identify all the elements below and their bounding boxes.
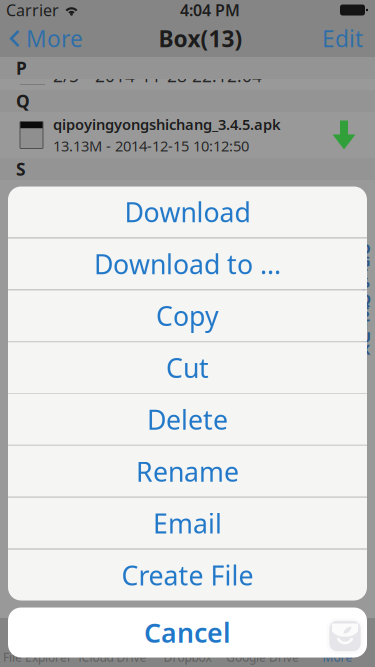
button[interactable]: Delete — [8, 394, 367, 445]
staticText: Copy — [156, 298, 219, 333]
button[interactable]: Edit — [310, 20, 375, 57]
button[interactable]: Create File — [8, 550, 367, 600]
button[interactable]: File Explorer — [0, 618, 75, 667]
staticText: P — [16, 56, 27, 79]
staticText: 4:04 PM — [180, 0, 240, 21]
staticText: Cancel — [144, 615, 231, 650]
staticText: Download — [124, 194, 250, 230]
staticText: Box(13) — [158, 23, 242, 53]
staticText: More — [322, 649, 352, 665]
staticText: Download to ... — [94, 246, 281, 281]
button[interactable]: More — [0, 20, 91, 57]
staticText: More — [26, 23, 83, 53]
staticText: D — [360, 239, 371, 258]
staticText: G — [360, 251, 371, 271]
button[interactable]: Dropbox — [150, 618, 225, 667]
button[interactable]: Cancel — [0, 607, 375, 657]
button[interactable]: Download to ... — [8, 238, 367, 289]
staticText: Delete — [147, 402, 228, 437]
staticText: Q — [16, 89, 30, 112]
staticText: T — [361, 314, 369, 334]
button[interactable]: Rename — [8, 446, 367, 497]
staticText: Cut — [166, 350, 209, 385]
staticText: Carrier — [6, 0, 59, 21]
staticText: qipoyingyongshichang_3.4.5.apk — [53, 114, 281, 134]
staticText: P — [361, 276, 370, 296]
staticText: S — [361, 302, 369, 321]
button[interactable]: Google Drive — [225, 618, 300, 667]
button[interactable]: Email — [8, 498, 367, 549]
staticText: Create File — [121, 557, 253, 593]
staticText: 2/5 - 2014-11-28 22:12:04 — [53, 64, 262, 87]
button[interactable]: Copy — [8, 290, 367, 341]
button[interactable]: Section index — [360, 242, 371, 355]
staticText: iCloud Drive — [78, 649, 146, 665]
staticText: Email — [153, 505, 222, 541]
staticText: Google Drive — [226, 649, 299, 665]
staticText: Dropbox — [163, 649, 211, 665]
staticText: X — [360, 339, 370, 359]
button[interactable]: iCloud Drive — [75, 618, 150, 667]
staticText: I — [362, 264, 368, 283]
staticText: Edit — [322, 23, 363, 53]
staticText: S — [16, 157, 26, 180]
staticText: U — [360, 327, 371, 346]
staticText: File Explorer — [3, 649, 72, 665]
button[interactable]: qipoyingyongshichang_3.4.5.apk — [0, 112, 375, 158]
button[interactable]: More — [300, 618, 375, 667]
staticText: Rename — [136, 454, 239, 489]
button[interactable]: Cut — [8, 342, 367, 393]
staticText: 13.13M - 2014-12-15 10:12:50 — [53, 136, 249, 155]
staticText: Q — [359, 289, 371, 308]
button[interactable]: Download — [8, 186, 367, 237]
